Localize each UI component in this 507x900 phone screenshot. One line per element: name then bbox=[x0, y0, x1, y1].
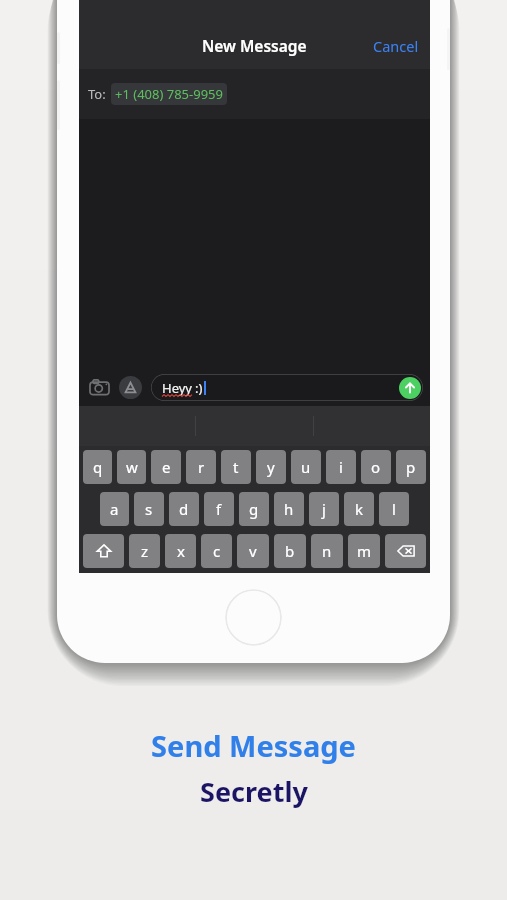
button[interactable]: To: bbox=[79, 69, 430, 119]
staticText: u bbox=[301, 457, 311, 477]
button[interactable]: Apps bbox=[119, 376, 142, 399]
button[interactable]: a bbox=[100, 492, 129, 526]
staticText: k bbox=[355, 499, 364, 519]
staticText: Cancel bbox=[373, 36, 419, 56]
button[interactable]: i bbox=[326, 450, 356, 484]
button[interactable]: j bbox=[309, 492, 339, 526]
button[interactable]: p bbox=[396, 450, 426, 484]
button[interactable]: s bbox=[134, 492, 164, 526]
button[interactable]: Shift bbox=[83, 534, 124, 568]
staticText: Send Message bbox=[151, 726, 356, 765]
button[interactable]: x bbox=[165, 534, 196, 568]
button[interactable]: Backspace bbox=[385, 534, 426, 568]
staticText: o bbox=[371, 457, 381, 477]
staticText: y bbox=[267, 457, 275, 477]
button[interactable]: m bbox=[348, 534, 380, 568]
button[interactable]: f bbox=[204, 492, 234, 526]
button[interactable]: v bbox=[237, 534, 269, 568]
staticText: To: bbox=[88, 85, 106, 103]
staticText: :) bbox=[195, 379, 203, 397]
staticText: Secretly bbox=[200, 773, 308, 810]
staticText: z bbox=[141, 541, 149, 561]
staticText: t bbox=[233, 457, 239, 477]
staticText: b bbox=[285, 541, 295, 561]
staticText: d bbox=[179, 499, 189, 519]
staticText: +1 (408) 785-9959 bbox=[115, 85, 223, 103]
staticText: j bbox=[322, 499, 326, 519]
button[interactable]: z bbox=[129, 534, 160, 568]
staticText: e bbox=[162, 457, 171, 477]
staticText: i bbox=[339, 457, 343, 477]
staticText: s bbox=[145, 499, 153, 519]
staticText: l bbox=[392, 499, 396, 519]
button[interactable]: b bbox=[274, 534, 306, 568]
button[interactable]: c bbox=[201, 534, 232, 568]
staticText: Heyy bbox=[162, 379, 192, 397]
staticText: f bbox=[216, 499, 222, 519]
button[interactable]: w bbox=[117, 450, 146, 484]
button[interactable]: t bbox=[221, 450, 251, 484]
button[interactable]: Heyy bbox=[151, 374, 423, 401]
button[interactable]: r bbox=[186, 450, 216, 484]
button[interactable]: y bbox=[256, 450, 286, 484]
staticText: New Message bbox=[202, 35, 307, 56]
button[interactable]: n bbox=[311, 534, 343, 568]
button[interactable]: Cancel bbox=[362, 29, 430, 63]
staticText: q bbox=[93, 457, 103, 477]
button[interactable]: h bbox=[274, 492, 304, 526]
staticText: v bbox=[249, 541, 257, 561]
button[interactable]: d bbox=[169, 492, 199, 526]
button[interactable]: u bbox=[291, 450, 321, 484]
staticText: h bbox=[284, 499, 294, 519]
button[interactable]: Send bbox=[399, 377, 421, 399]
staticText: w bbox=[126, 457, 138, 477]
staticText: p bbox=[406, 457, 416, 477]
button[interactable]: k bbox=[344, 492, 374, 526]
staticText: g bbox=[249, 499, 259, 519]
button[interactable]: Home bbox=[225, 589, 282, 646]
staticText: a bbox=[110, 499, 119, 519]
button[interactable]: Camera bbox=[86, 374, 112, 400]
button[interactable]: q bbox=[83, 450, 112, 484]
button[interactable]: g bbox=[239, 492, 269, 526]
staticText: c bbox=[213, 541, 221, 561]
button[interactable]: l bbox=[379, 492, 409, 526]
button[interactable]: o bbox=[361, 450, 391, 484]
button[interactable]: e bbox=[151, 450, 181, 484]
staticText: n bbox=[322, 541, 332, 561]
staticText: r bbox=[198, 457, 205, 477]
staticText: m bbox=[357, 541, 372, 561]
staticText: x bbox=[177, 541, 185, 561]
